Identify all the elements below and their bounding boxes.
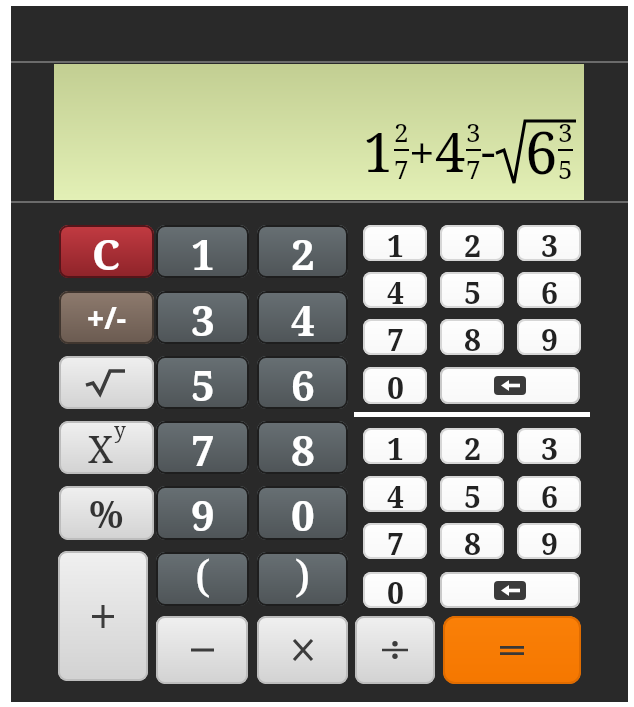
staticText: % (89, 487, 124, 539)
staticText: X (88, 422, 114, 474)
staticText: 6 (541, 476, 558, 512)
staticText: 6 (541, 272, 558, 308)
button[interactable]: 4 (363, 476, 427, 512)
button[interactable]: ( (156, 552, 249, 606)
button[interactable]: 5 (440, 476, 504, 512)
button[interactable]: ) (257, 552, 348, 606)
button[interactable] (156, 616, 248, 684)
button[interactable]: 9 (156, 486, 249, 540)
staticText: ( (195, 552, 211, 599)
button[interactable]: 6 (257, 356, 348, 409)
button[interactable]: 8 (440, 523, 504, 559)
button[interactable]: 0 (363, 367, 427, 404)
button[interactable] (58, 551, 148, 681)
staticText: 2 (394, 114, 409, 149)
button[interactable] (59, 356, 154, 409)
button[interactable]: 9 (517, 319, 581, 355)
button[interactable]: 0 (363, 572, 427, 608)
staticText: 4 (387, 272, 404, 308)
staticText: 2 (291, 225, 315, 278)
button[interactable]: 8 (257, 421, 348, 474)
button[interactable]: 1 (156, 225, 249, 278)
staticText: 8 (464, 319, 481, 355)
button[interactable]: 3 (517, 225, 581, 261)
staticText: 3 (541, 225, 558, 261)
button[interactable] (440, 572, 580, 608)
staticText: 2 (464, 225, 481, 261)
staticText: 4 (387, 476, 404, 512)
button[interactable]: 2 (257, 225, 348, 278)
button[interactable]: 6 (517, 272, 581, 308)
staticText: C (92, 225, 121, 278)
staticText: 5 (464, 476, 481, 512)
button[interactable]: 1 (363, 225, 427, 261)
button[interactable] (440, 367, 580, 404)
staticText: 1 (387, 428, 404, 464)
button[interactable]: 0 (257, 486, 348, 540)
button[interactable]: X (59, 421, 154, 474)
button[interactable]: C (59, 225, 154, 278)
staticText: 0 (387, 572, 404, 608)
button[interactable]: +/- (59, 291, 154, 344)
staticText: 7 (387, 523, 404, 559)
button[interactable]: 9 (517, 523, 581, 559)
staticText: 0 (387, 367, 404, 404)
staticText: 7 (387, 319, 404, 355)
staticText: 7 (466, 151, 481, 186)
staticText: + (409, 121, 435, 184)
staticText: 8 (464, 523, 481, 559)
staticText: 1 (387, 225, 404, 261)
staticText: 6 (525, 112, 558, 191)
staticText: 1 (363, 114, 394, 188)
staticText: 4 (291, 291, 315, 344)
staticText: 3 (191, 291, 215, 344)
staticText: 9 (541, 319, 558, 355)
staticText: 2 (464, 428, 481, 464)
button[interactable]: 3 (156, 291, 249, 344)
button[interactable]: 7 (363, 523, 427, 559)
staticText: 5 (191, 356, 215, 409)
button[interactable] (257, 616, 348, 684)
button[interactable]: 7 (156, 421, 249, 474)
button[interactable]: 1 (363, 428, 427, 464)
button[interactable]: 4 (257, 291, 348, 344)
staticText: ) (295, 552, 311, 599)
staticText: y (114, 421, 126, 445)
button[interactable] (443, 616, 581, 684)
button[interactable]: 5 (156, 356, 249, 409)
button[interactable]: 2 (440, 225, 504, 261)
staticText: 9 (191, 486, 215, 540)
button[interactable]: 4 (363, 272, 427, 308)
staticText: 4 (435, 114, 466, 188)
staticText: 3 (466, 114, 481, 149)
button[interactable]: 8 (440, 319, 504, 355)
staticText: 8 (291, 421, 315, 474)
button[interactable] (355, 616, 435, 684)
staticText: 7 (394, 151, 409, 186)
staticText: - (481, 119, 496, 182)
staticText: 1 (191, 225, 215, 278)
staticText: 7 (191, 421, 215, 474)
button[interactable]: 3 (517, 428, 581, 464)
button[interactable]: 5 (440, 272, 504, 308)
button[interactable]: % (59, 486, 154, 540)
button[interactable]: 2 (440, 428, 504, 464)
staticText: 3 (558, 114, 573, 149)
staticText: 5 (558, 151, 573, 186)
staticText: 3 (541, 428, 558, 464)
staticText: 6 (291, 356, 315, 409)
staticText: 5 (464, 272, 481, 308)
staticText: 9 (541, 523, 558, 559)
staticText: 0 (291, 486, 315, 540)
staticText: +/- (87, 297, 127, 338)
button[interactable]: 6 (517, 476, 581, 512)
button[interactable]: 7 (363, 319, 427, 355)
